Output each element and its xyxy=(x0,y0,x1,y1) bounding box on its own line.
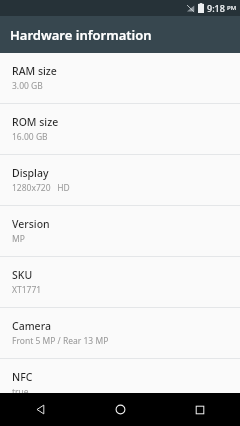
staticText: 1280x720 HD xyxy=(12,182,70,194)
staticText: RAM size xyxy=(12,64,57,78)
staticText: Front 5 MP / Rear 13 MP xyxy=(12,335,109,347)
staticText: Version xyxy=(12,217,50,231)
button[interactable]: Version xyxy=(0,206,240,256)
button[interactable]: ROM size xyxy=(0,104,240,154)
staticText: PM xyxy=(227,4,237,12)
staticText: 16.00 GB xyxy=(12,131,48,143)
staticText: Hardware information xyxy=(10,26,152,44)
button[interactable]: SKU xyxy=(0,257,240,307)
button[interactable]: RAM size xyxy=(0,53,240,103)
staticText: MP xyxy=(12,233,25,245)
staticText: Display xyxy=(12,166,49,180)
staticText: XT1771 xyxy=(12,284,42,296)
button[interactable]: Back xyxy=(0,393,80,426)
staticText: ROM size xyxy=(12,115,59,129)
button[interactable]: Camera xyxy=(0,308,240,358)
staticText: 3.00 GB xyxy=(12,80,43,92)
staticText: true xyxy=(12,386,29,393)
staticText: 9:18 xyxy=(207,2,225,14)
button[interactable]: Display xyxy=(0,155,240,205)
staticText: NFC xyxy=(12,370,33,384)
button[interactable]: NFC xyxy=(0,359,240,393)
button[interactable]: Home xyxy=(80,393,160,426)
button[interactable]: Recent apps xyxy=(160,393,240,426)
staticText: SKU xyxy=(12,268,33,282)
staticText: Camera xyxy=(12,319,51,333)
